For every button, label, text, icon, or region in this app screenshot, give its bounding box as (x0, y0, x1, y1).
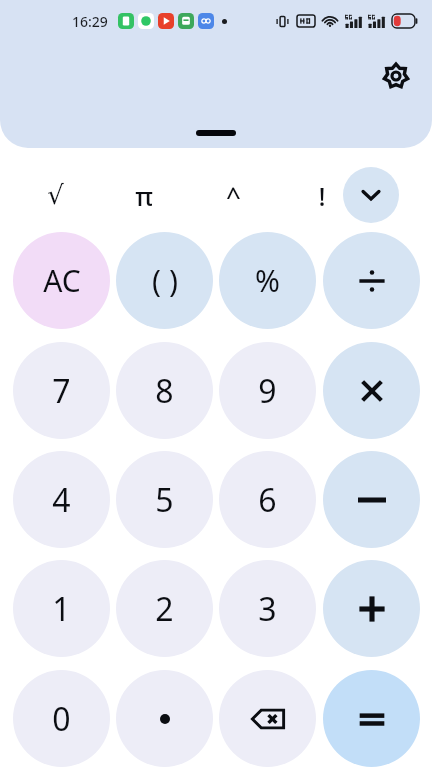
button[interactable]: 4 (13, 451, 110, 548)
staticText: AC (43, 260, 81, 301)
staticText: 16:29 (72, 12, 108, 31)
button[interactable]: 1 (13, 560, 110, 657)
staticText: 0 (52, 697, 71, 741)
staticText: 5 (155, 478, 174, 522)
staticText: % (255, 260, 280, 301)
staticText: √ (47, 180, 64, 210)
staticText: ! (318, 178, 326, 213)
staticText: 9 (258, 369, 277, 413)
button[interactable]: √ (27, 167, 83, 223)
staticText: 3 (258, 587, 277, 631)
button[interactable]: % (219, 232, 316, 329)
staticText: ( ) (152, 260, 178, 301)
button[interactable]: Backspace (219, 670, 316, 767)
button[interactable]: Multiply (323, 342, 420, 439)
staticText: ^ (226, 178, 241, 213)
button[interactable]: 0 (13, 670, 110, 767)
button[interactable]: ! (294, 167, 350, 223)
button[interactable]: 8 (116, 342, 213, 439)
button[interactable]: 9 (219, 342, 316, 439)
staticText: 2 (155, 587, 174, 631)
button[interactable]: Subtract (323, 451, 420, 548)
button[interactable]: 2 (116, 560, 213, 657)
button[interactable]: Expand history (196, 130, 236, 136)
button[interactable]: 7 (13, 342, 110, 439)
button[interactable]: 6 (219, 451, 316, 548)
button[interactable]: 3 (219, 560, 316, 657)
staticText: 1 (52, 587, 71, 631)
button[interactable]: Add (323, 560, 420, 657)
button[interactable]: 5 (116, 451, 213, 548)
staticText: 8 (155, 369, 174, 413)
button[interactable]: More functions (343, 167, 399, 223)
button[interactable]: Divide (323, 232, 420, 329)
button[interactable]: Settings (374, 54, 418, 98)
button[interactable]: ( ) (116, 232, 213, 329)
button[interactable]: ^ (205, 167, 261, 223)
button[interactable]: Equals (323, 670, 420, 767)
button[interactable]: AC (13, 232, 110, 329)
staticText: 6 (258, 478, 277, 522)
staticText: 7 (52, 369, 71, 413)
button[interactable]: Decimal point (116, 670, 213, 767)
staticText: π (135, 178, 153, 213)
button[interactable]: π (116, 167, 172, 223)
staticText: 4 (52, 478, 71, 522)
